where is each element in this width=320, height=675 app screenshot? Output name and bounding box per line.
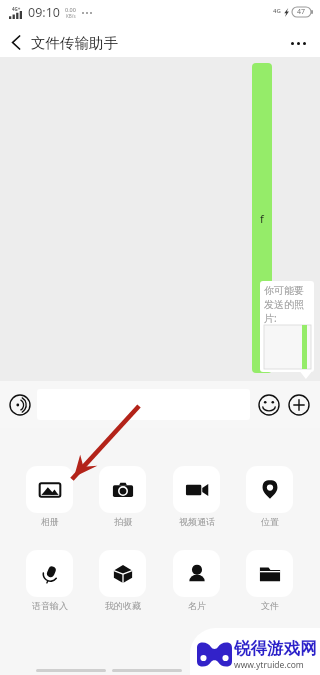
button[interactable]: 语音输入 <box>26 550 73 611</box>
button[interactable]: Emoji <box>255 391 283 419</box>
staticText: 我的收藏 <box>105 600 141 611</box>
staticText: 相册 <box>41 516 59 527</box>
staticText: 位置 <box>261 516 279 527</box>
button[interactable]: 文件 <box>246 550 293 611</box>
button[interactable]: Voice message <box>6 391 34 419</box>
button[interactable]: More options <box>276 27 320 60</box>
staticText: f <box>260 211 264 226</box>
staticText: KB/s <box>66 13 76 19</box>
button[interactable]: 位置 <box>246 466 293 527</box>
button[interactable]: 视频通话 <box>173 466 220 527</box>
button[interactable]: More attachments <box>285 391 313 419</box>
button[interactable]: 相册 <box>26 466 73 527</box>
button[interactable]: 名片 <box>173 550 220 611</box>
staticText: 文件 <box>261 600 279 611</box>
staticText: 47 <box>297 7 306 17</box>
staticText: 文件传输助手 <box>31 34 118 52</box>
staticText: 4G+ <box>12 6 21 12</box>
staticText: 锐得游戏网 <box>234 638 317 659</box>
button[interactable]: 拍摄 <box>99 466 146 527</box>
staticText: 你可能要 发送的照 片: <box>264 284 304 325</box>
staticText: 09:10 <box>28 4 60 21</box>
button[interactable]: Back <box>0 26 31 59</box>
staticText: 视频通话 <box>179 516 215 527</box>
button[interactable]: 我的收藏 <box>99 550 146 611</box>
staticText: www.ytruide.com <box>234 659 304 671</box>
staticText: 名片 <box>188 600 206 611</box>
staticText: 0.00 <box>65 6 76 13</box>
staticText: 语音输入 <box>32 600 68 611</box>
staticText: 4G <box>273 7 281 15</box>
button[interactable] <box>37 389 250 420</box>
staticText: 拍摄 <box>114 516 132 527</box>
